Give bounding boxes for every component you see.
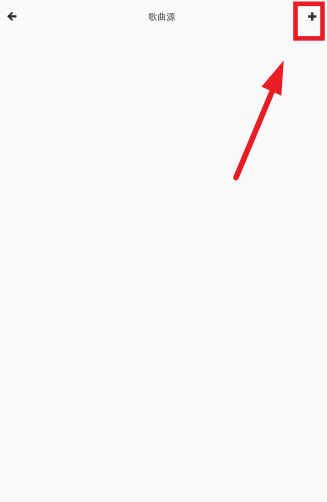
staticText: 歌曲源 bbox=[149, 11, 176, 22]
button[interactable]: Back bbox=[0, 0, 24, 33]
button[interactable]: Add bbox=[299, 0, 325, 33]
